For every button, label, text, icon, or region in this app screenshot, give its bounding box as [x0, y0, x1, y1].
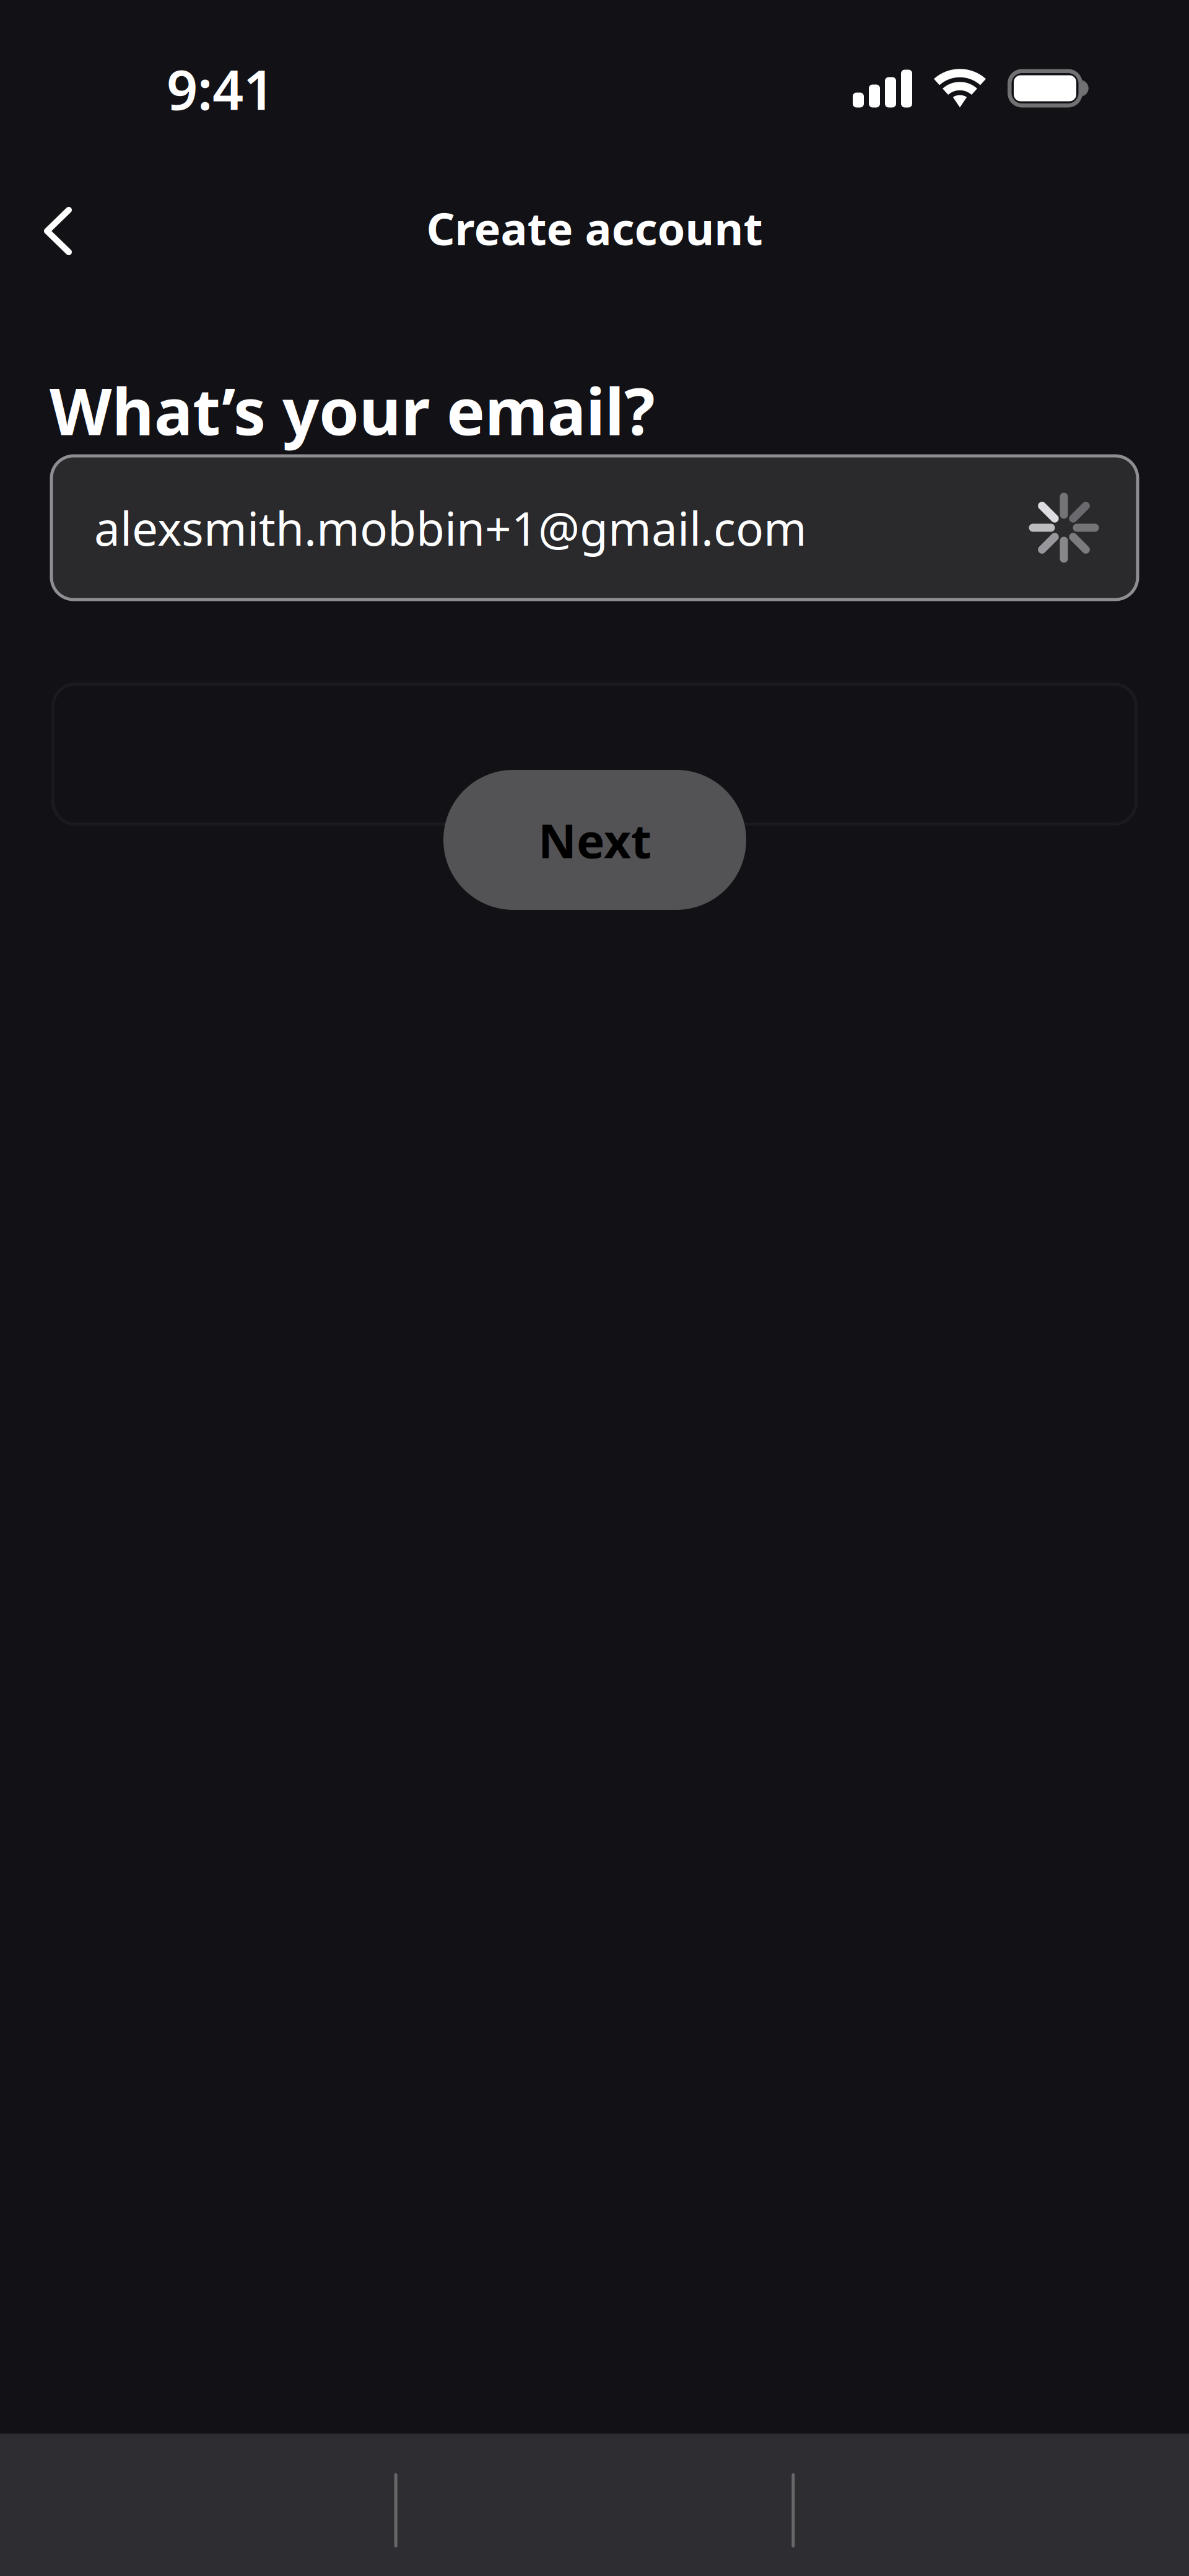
- staticText: alexsmith.mobbin+1@gmail.com: [94, 497, 807, 558]
- button[interactable]: alexsmith.mobbin+1@gmail.com: [51, 456, 1138, 600]
- staticText: Next: [538, 809, 651, 871]
- staticText: Create account: [426, 198, 763, 258]
- button[interactable]: Back: [14, 183, 107, 277]
- staticText: 9:41: [167, 53, 274, 125]
- staticText: What’s your email?: [50, 367, 655, 453]
- button[interactable]: Next: [443, 770, 746, 910]
